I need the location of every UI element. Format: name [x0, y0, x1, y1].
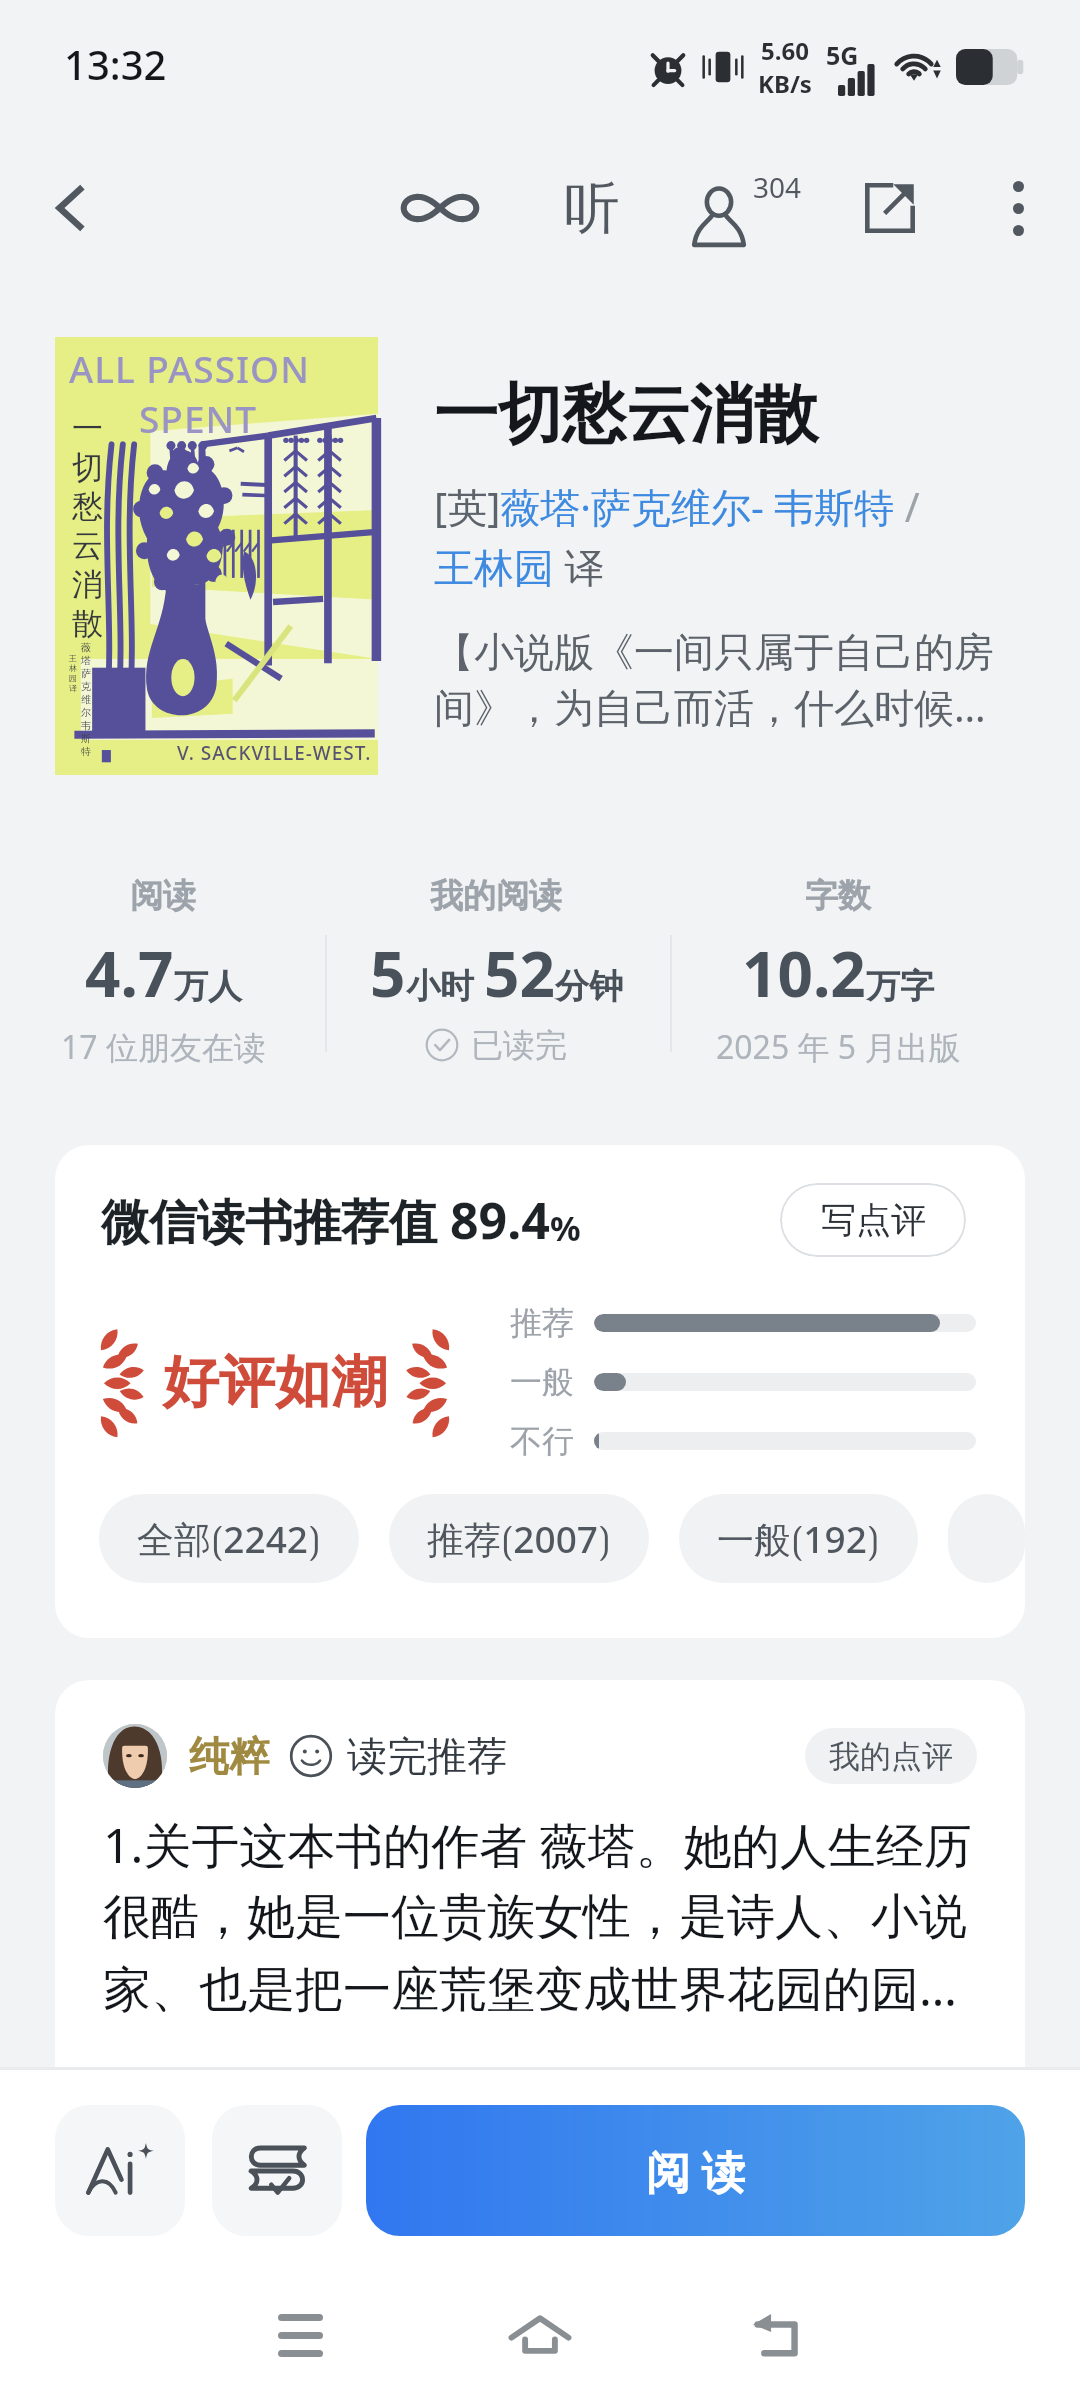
button[interactable]: Listen: [532, 148, 652, 268]
staticText: 字数: [805, 875, 871, 917]
staticText: 推荐⟮2007⟯: [427, 1513, 611, 1564]
staticText: 林: [69, 663, 77, 673]
staticText: 维: [81, 693, 91, 706]
staticText: 译: [69, 683, 77, 693]
staticText: 10.2: [742, 931, 866, 1015]
staticText: 克: [81, 680, 91, 693]
staticText: 阅 读: [646, 2141, 746, 2201]
staticText: 一般: [510, 1362, 574, 1402]
staticText: 【小说版《一间只属于自己的房间》，为自己而活，什么时候…: [434, 627, 995, 734]
staticText: 王: [69, 653, 77, 663]
staticText: V. SACKVILLE-WEST.: [177, 740, 372, 766]
staticText: 切: [72, 448, 103, 487]
staticText: 万字: [866, 965, 934, 1008]
button[interactable]: Share: [830, 148, 950, 268]
staticText: 已读完: [471, 1025, 567, 1065]
staticText: 微信读书推荐值: [101, 1188, 450, 1254]
button[interactable]: Readers 304: [688, 148, 808, 268]
staticText: 1.关于这本书的作者 薇塔。她的人生经历很酷，她是一位贵族女性，是诗人、小说家、…: [103, 1812, 1007, 2020]
staticText: 小时: [406, 965, 474, 1008]
staticText: 13:32: [64, 37, 167, 91]
button[interactable]: 我的点评: [805, 1728, 977, 1784]
button[interactable]: 写点评: [780, 1183, 966, 1257]
staticText: 云: [72, 526, 103, 565]
staticText: 分钟: [555, 965, 623, 1008]
staticText: KB/s: [758, 67, 812, 100]
staticText: 萨: [81, 667, 91, 680]
staticText: ALL PASSION: [69, 343, 378, 393]
staticText: 89.4: [450, 1186, 550, 1254]
staticText: 推荐: [510, 1303, 574, 1343]
staticText: 写点评: [821, 1198, 926, 1242]
staticText: 听: [564, 173, 620, 244]
button[interactable]: AI assistant: [55, 2105, 185, 2236]
staticText: [英]薇塔·萨克维尔- 韦斯特 / 王林园 译: [434, 479, 920, 593]
staticText: 散: [72, 604, 103, 643]
button[interactable]: Back: [720, 2275, 840, 2395]
staticText: 纯粹: [189, 1731, 269, 1781]
staticText: 我的阅读: [430, 875, 562, 917]
staticText: 4.7: [85, 931, 174, 1015]
staticText: 5.60: [761, 34, 809, 67]
staticText: 全部⟮2242⟯: [137, 1513, 321, 1564]
staticText: 特: [81, 745, 91, 758]
staticText: 一般⟮192⟯: [717, 1513, 880, 1564]
button[interactable]: More: [958, 148, 1078, 268]
staticText: 读完推荐: [347, 1731, 507, 1781]
button[interactable]: Home: [480, 2275, 600, 2395]
staticText: 塔: [81, 654, 91, 667]
staticText: 消: [72, 565, 103, 604]
staticText: 5: [370, 931, 406, 1015]
button[interactable]: Recent apps: [240, 2275, 360, 2395]
staticText: 韦: [81, 719, 91, 732]
button[interactable]: 全部⟮2242⟯: [99, 1494, 359, 1583]
staticText: %: [550, 1205, 581, 1251]
staticText: 17 位朋友在读: [61, 1025, 266, 1069]
staticText: 尔: [81, 706, 91, 719]
button[interactable]: 阅 读: [366, 2105, 1025, 2236]
staticText: 薇: [81, 641, 91, 654]
button[interactable]: Back: [24, 160, 120, 256]
button[interactable]: 一般⟮192⟯: [679, 1494, 918, 1583]
staticText: 5G: [826, 38, 859, 72]
staticText: 不行: [510, 1421, 574, 1461]
staticText: 阅读: [130, 875, 196, 917]
button[interactable]: Book cover 一切愁云消散: [55, 337, 378, 775]
button[interactable]: Unlimited: [380, 148, 500, 268]
staticText: 304: [753, 168, 802, 206]
staticText: 万人: [174, 965, 242, 1008]
staticText: SPENT: [139, 393, 378, 443]
staticText: 园: [69, 673, 77, 683]
staticText: 一: [72, 409, 103, 448]
button[interactable]: 推荐⟮2007⟯: [389, 1494, 649, 1583]
staticText: 52: [484, 931, 555, 1015]
staticText: 一切愁云消散: [434, 374, 818, 455]
staticText: 我的点评: [829, 1737, 953, 1776]
staticText: 好评如潮: [163, 1347, 387, 1418]
staticText: 斯: [81, 732, 91, 745]
staticText: 愁: [72, 487, 103, 526]
staticText: 2025 年 5 月出版: [716, 1025, 961, 1069]
button[interactable]: Add to shelf: [212, 2105, 342, 2236]
